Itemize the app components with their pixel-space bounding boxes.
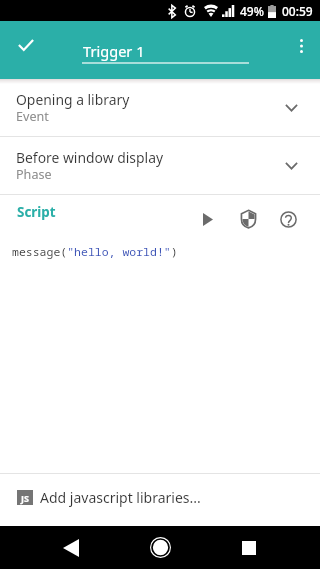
button[interactable]: Done (1, 20, 51, 70)
staticText: Opening a library (16, 90, 130, 109)
staticText: message("hello, world!") (12, 244, 178, 260)
button[interactable]: Help (268, 199, 308, 239)
staticText: Script (17, 203, 56, 221)
staticText: 00:59 (282, 3, 313, 19)
button[interactable]: Security (228, 199, 268, 239)
staticText: 49% (240, 3, 264, 19)
staticText: JS (21, 492, 29, 504)
button[interactable]: Run (188, 199, 228, 239)
staticText: Before window display (16, 148, 164, 167)
button[interactable]: Back (47, 526, 95, 569)
button[interactable]: More options (281, 26, 320, 66)
button[interactable]: Home (136, 526, 184, 569)
button[interactable]: Trigger 1 (82, 35, 249, 65)
button[interactable]: Recents (225, 526, 273, 569)
button[interactable]: Opening a library (0, 79, 320, 136)
staticText: Phase (16, 166, 52, 183)
staticText: Event (16, 108, 49, 125)
button[interactable]: Before window display (0, 137, 320, 194)
staticText: Add javascript libraries... (40, 488, 201, 507)
staticText: Trigger 1 (83, 41, 145, 61)
button[interactable]: JS (0, 474, 320, 526)
